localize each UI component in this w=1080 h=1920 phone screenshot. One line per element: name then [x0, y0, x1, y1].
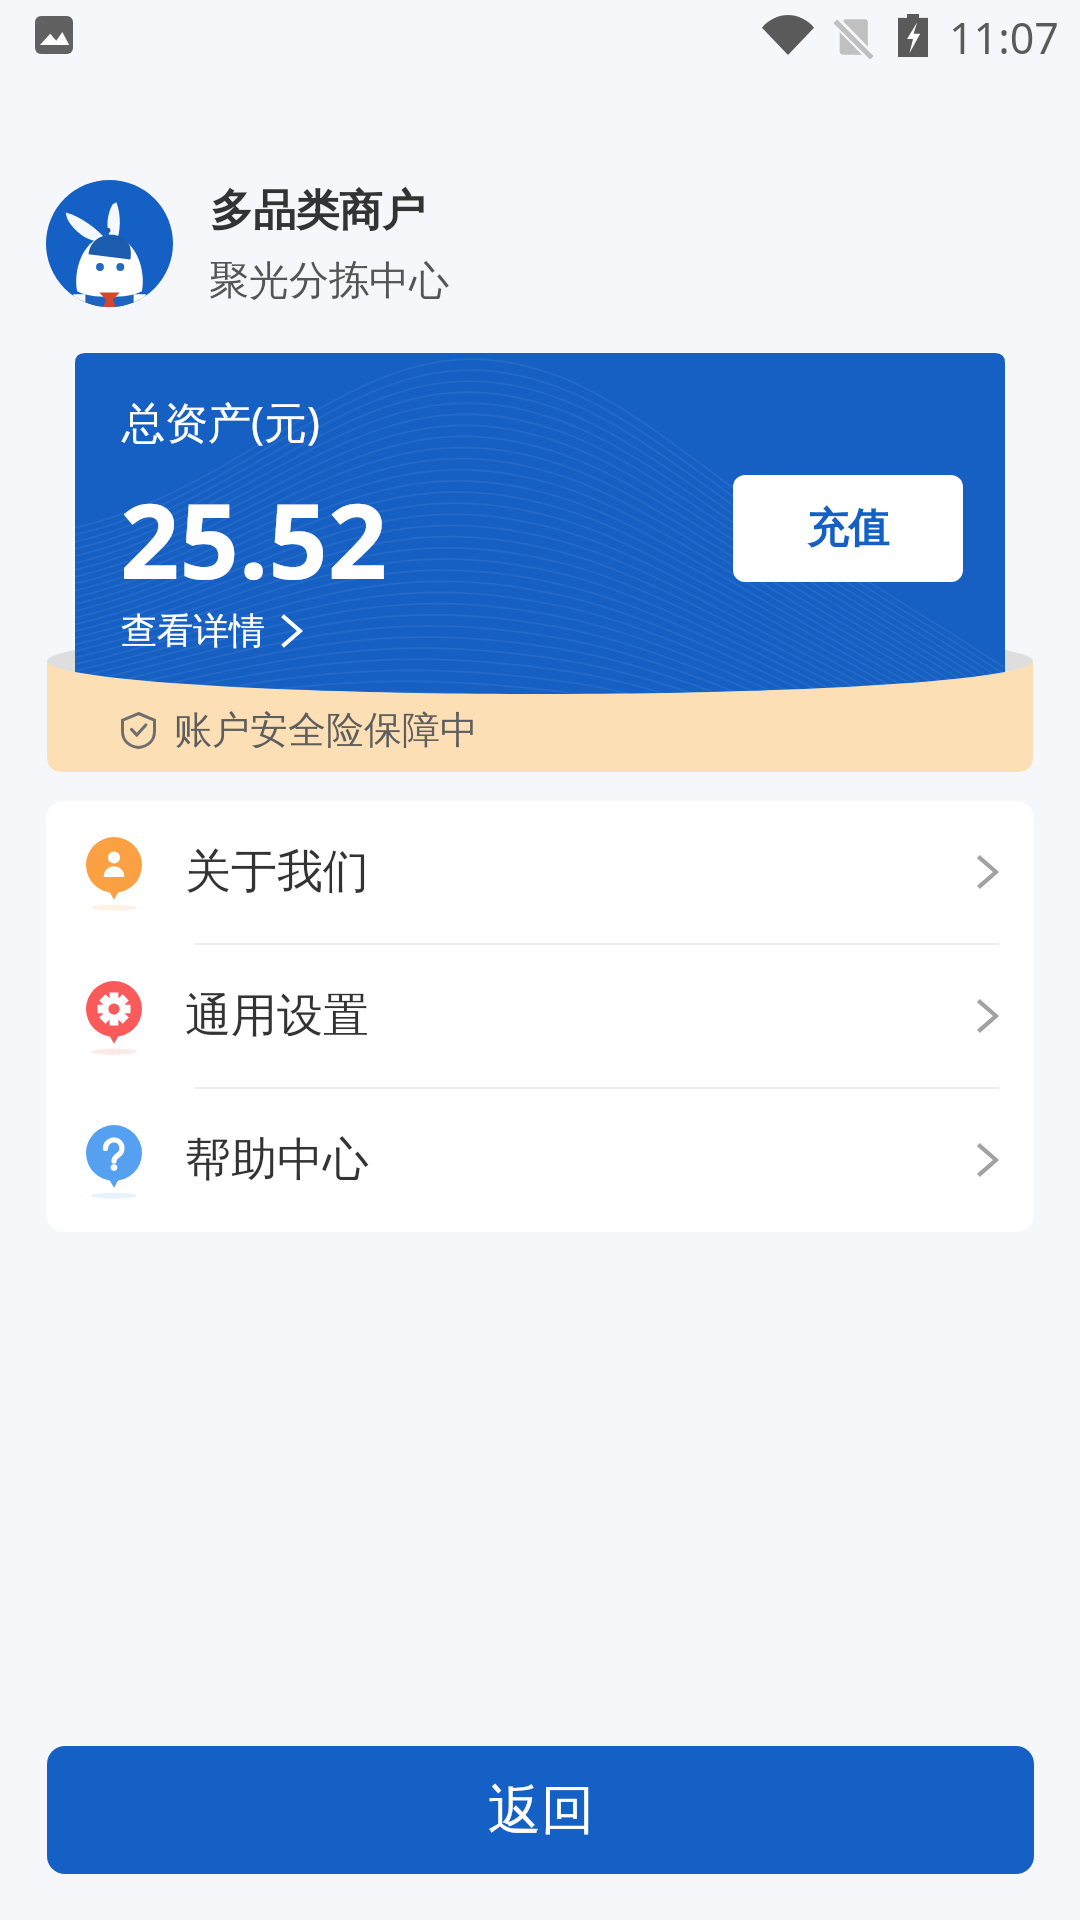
staticText: 返回 — [488, 1777, 594, 1844]
staticText: 11:07 — [949, 8, 1059, 67]
staticText: 关于我们 — [185, 843, 369, 901]
staticText: 账户安全险保障中 — [174, 706, 478, 754]
button[interactable]: 充值 — [733, 475, 963, 582]
staticText: 通用设置 — [185, 987, 369, 1045]
staticText: 聚光分拣中心 — [209, 255, 449, 305]
staticText: 多品类商户 — [210, 184, 425, 238]
staticText: 帮助中心 — [185, 1131, 369, 1189]
button[interactable]: 帮助中心 — [46, 1089, 1034, 1231]
button[interactable]: 多品类商户 — [209, 176, 629, 316]
staticText: 总资产(元) — [122, 392, 320, 451]
button[interactable]: 返回 — [47, 1746, 1034, 1874]
button[interactable]: Merchant avatar — [46, 180, 173, 307]
staticText: 充值 — [807, 503, 889, 555]
staticText: 25.52 — [120, 468, 388, 610]
button[interactable]: 查看详情 — [111, 596, 316, 665]
staticText: 查看详情 — [121, 608, 265, 653]
button[interactable]: 通用设置 — [46, 945, 1034, 1087]
button[interactable]: 关于我们 — [46, 801, 1034, 943]
